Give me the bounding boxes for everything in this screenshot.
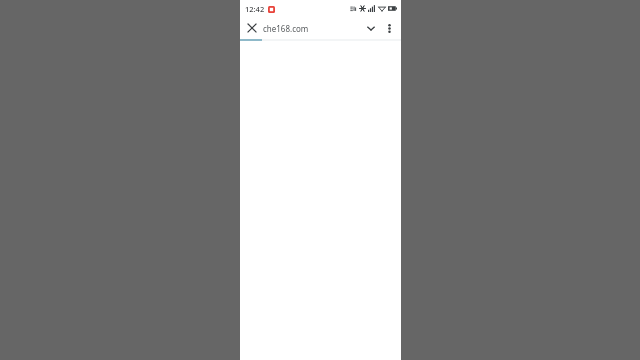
button[interactable]: Close	[244, 20, 260, 36]
staticText: che168.com	[263, 23, 309, 34]
staticText: 12:42	[245, 4, 265, 14]
button[interactable]: Expand	[363, 20, 379, 36]
button[interactable]: che168.com	[263, 17, 363, 39]
button[interactable]: More options	[381, 20, 397, 36]
